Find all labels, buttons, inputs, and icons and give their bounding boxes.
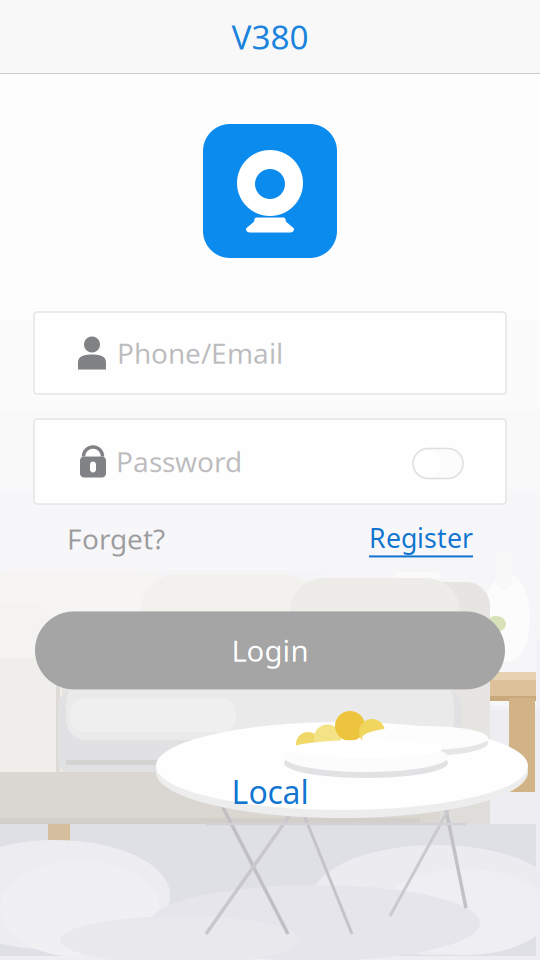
button[interactable]: Forget? — [67, 520, 165, 557]
button[interactable]: Local — [231, 770, 308, 813]
button[interactable]: Password — [34, 419, 506, 504]
button[interactable]: Login — [35, 611, 505, 689]
staticText: Password — [116, 443, 242, 480]
button[interactable]: Register — [369, 520, 473, 557]
staticText: Forget? — [67, 520, 165, 557]
staticText: Local — [231, 770, 308, 813]
staticText: Login — [231, 631, 308, 670]
staticText: Phone/Email — [117, 334, 283, 372]
button[interactable]: Phone/Email — [34, 312, 506, 394]
staticText: Register — [369, 520, 473, 555]
staticText: V380 — [231, 14, 308, 59]
